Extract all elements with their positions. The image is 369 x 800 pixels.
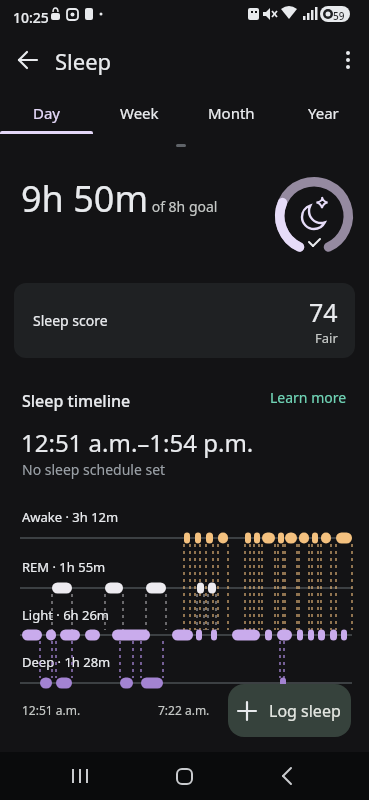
button[interactable] (268, 758, 304, 794)
button[interactable]: Log sleep (228, 684, 351, 737)
staticText: Log sleep (269, 700, 341, 722)
staticText: 7:22 a.m. (158, 702, 210, 718)
staticText: 12:51 a.m.–1:54 p.m. (21, 426, 254, 459)
staticText: No sleep schedule set (22, 460, 166, 479)
staticText: Awake · 3h 12m (22, 508, 119, 526)
staticText: Deep · 1h 28m (22, 653, 111, 671)
staticText: Year (308, 103, 339, 123)
staticText: 10:25 (13, 8, 49, 27)
button[interactable]: Sleep score (14, 283, 355, 358)
button[interactable]: Day (0, 92, 93, 134)
staticText: Learn more (270, 388, 347, 407)
button[interactable] (10, 42, 46, 78)
staticText: 74 (309, 295, 338, 329)
staticText: 59 (333, 9, 345, 23)
button[interactable]: Learn more (200, 388, 347, 407)
staticText: Fair (315, 329, 338, 347)
button[interactable]: Year (277, 92, 369, 134)
staticText: Sleep (55, 46, 112, 76)
button[interactable] (330, 42, 366, 78)
staticText: Month (208, 103, 255, 123)
button[interactable] (62, 758, 98, 794)
staticText: 9h 50m of 8h goal (21, 174, 218, 223)
button[interactable] (166, 758, 202, 794)
staticText: Sleep score (33, 311, 108, 330)
staticText: 12:51 a.m. (22, 702, 81, 718)
staticText: Light · 6h 26m (22, 606, 110, 624)
staticText: REM · 1h 55m (22, 558, 106, 576)
staticText: Week (120, 103, 159, 123)
button[interactable]: Week (93, 92, 185, 134)
button[interactable]: Month (185, 92, 277, 134)
staticText: Sleep timeline (22, 390, 131, 412)
staticText: Day (33, 103, 61, 123)
